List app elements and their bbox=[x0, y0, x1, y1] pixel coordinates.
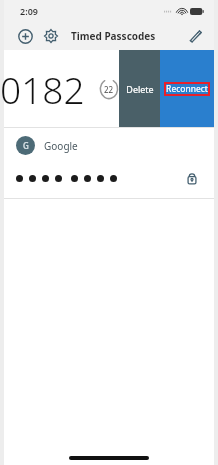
button[interactable]: 0182 bbox=[4, 50, 119, 127]
button[interactable]: G bbox=[4, 128, 214, 198]
staticText: 0182 bbox=[0, 64, 85, 114]
staticText: 22 bbox=[104, 84, 114, 95]
button[interactable]: Delete bbox=[119, 50, 160, 127]
button[interactable]: Add bbox=[12, 23, 38, 49]
staticText: Reconnect bbox=[166, 83, 208, 95]
staticText: Delete bbox=[126, 83, 154, 95]
staticText: Timed Passcodes bbox=[71, 29, 156, 43]
button[interactable]: Edit bbox=[182, 23, 208, 49]
button[interactable]: Reconnect bbox=[160, 50, 214, 127]
button[interactable]: Show passcode bbox=[182, 168, 202, 188]
staticText: G bbox=[23, 140, 29, 151]
button[interactable]: Settings bbox=[38, 23, 64, 49]
staticText: 2:09 bbox=[20, 5, 38, 17]
staticText: Google bbox=[44, 139, 78, 153]
